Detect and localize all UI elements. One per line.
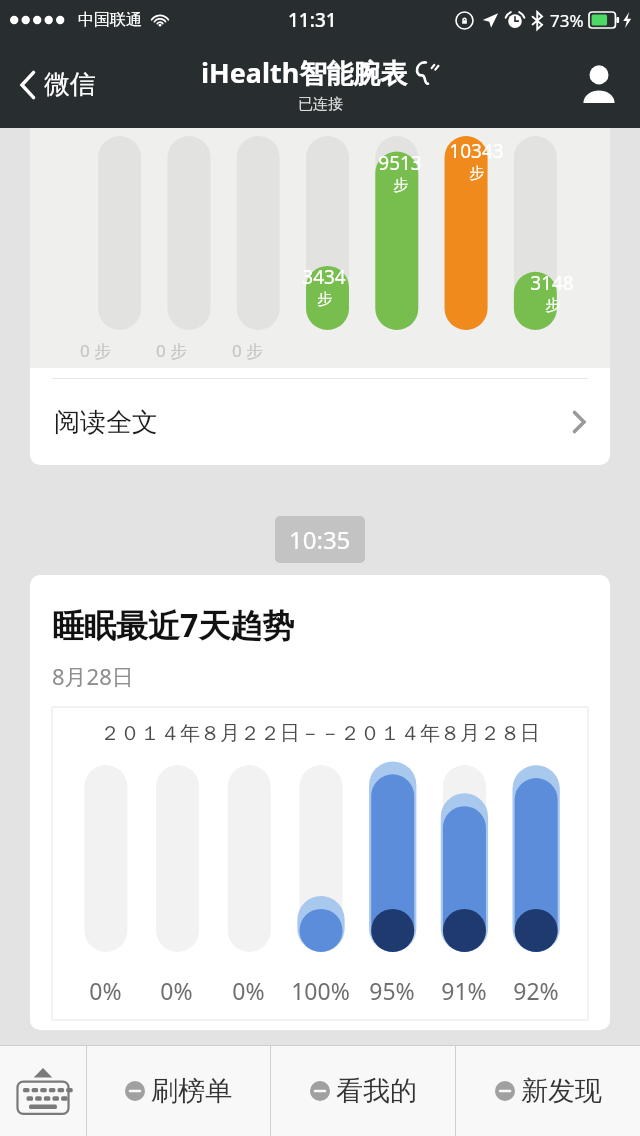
staticText: 已连接: [298, 95, 343, 114]
staticText: 0%: [232, 975, 265, 1006]
button[interactable]: 微信: [12, 62, 104, 107]
staticText: 中国联通: [78, 10, 142, 30]
staticText: ２０１４年８月２２日－－２０１４年８月２８日: [100, 721, 540, 746]
button[interactable]: 刷榜单: [87, 1046, 270, 1136]
staticText: 阅读全文: [54, 406, 158, 439]
button[interactable]: 睡眠最近7天趋势: [30, 575, 610, 1030]
button[interactable]: 0 步: [30, 128, 610, 465]
staticText: 10:35: [289, 523, 351, 556]
staticText: 步: [545, 296, 560, 315]
staticText: 8月28日: [52, 661, 134, 691]
staticText: 92%: [513, 975, 559, 1006]
staticText: 刷榜单: [151, 1074, 232, 1108]
staticText: 3434: [302, 264, 346, 290]
staticText: 微信: [44, 68, 96, 101]
staticText: 100%: [291, 975, 350, 1006]
staticText: 9513: [378, 150, 422, 176]
staticText: 3148: [530, 270, 574, 296]
staticText: 0%: [89, 975, 122, 1006]
button[interactable]: 阅读全文: [30, 379, 610, 465]
staticText: 睡眠最近7天趋势: [52, 603, 295, 647]
staticText: 步: [317, 290, 332, 309]
button[interactable]: Contact profile: [572, 55, 626, 113]
staticText: 0 步: [156, 339, 188, 362]
staticText: 10343: [449, 138, 504, 164]
staticText: iHealth智能腕表: [201, 54, 408, 91]
staticText: 0 步: [232, 339, 264, 362]
staticText: 73%: [550, 9, 584, 32]
staticText: 0 步: [80, 339, 112, 362]
staticText: 95%: [369, 975, 415, 1006]
button[interactable]: 新发现: [456, 1046, 640, 1136]
staticText: 11:31: [288, 7, 337, 33]
staticText: 91%: [441, 975, 487, 1006]
button[interactable]: 看我的: [271, 1046, 455, 1136]
staticText: 步: [469, 164, 484, 183]
staticText: 步: [393, 176, 408, 195]
staticText: 新发现: [521, 1074, 602, 1108]
staticText: 看我的: [336, 1074, 417, 1108]
button[interactable]: Keyboard: [0, 1046, 86, 1136]
staticText: 0%: [160, 975, 193, 1006]
